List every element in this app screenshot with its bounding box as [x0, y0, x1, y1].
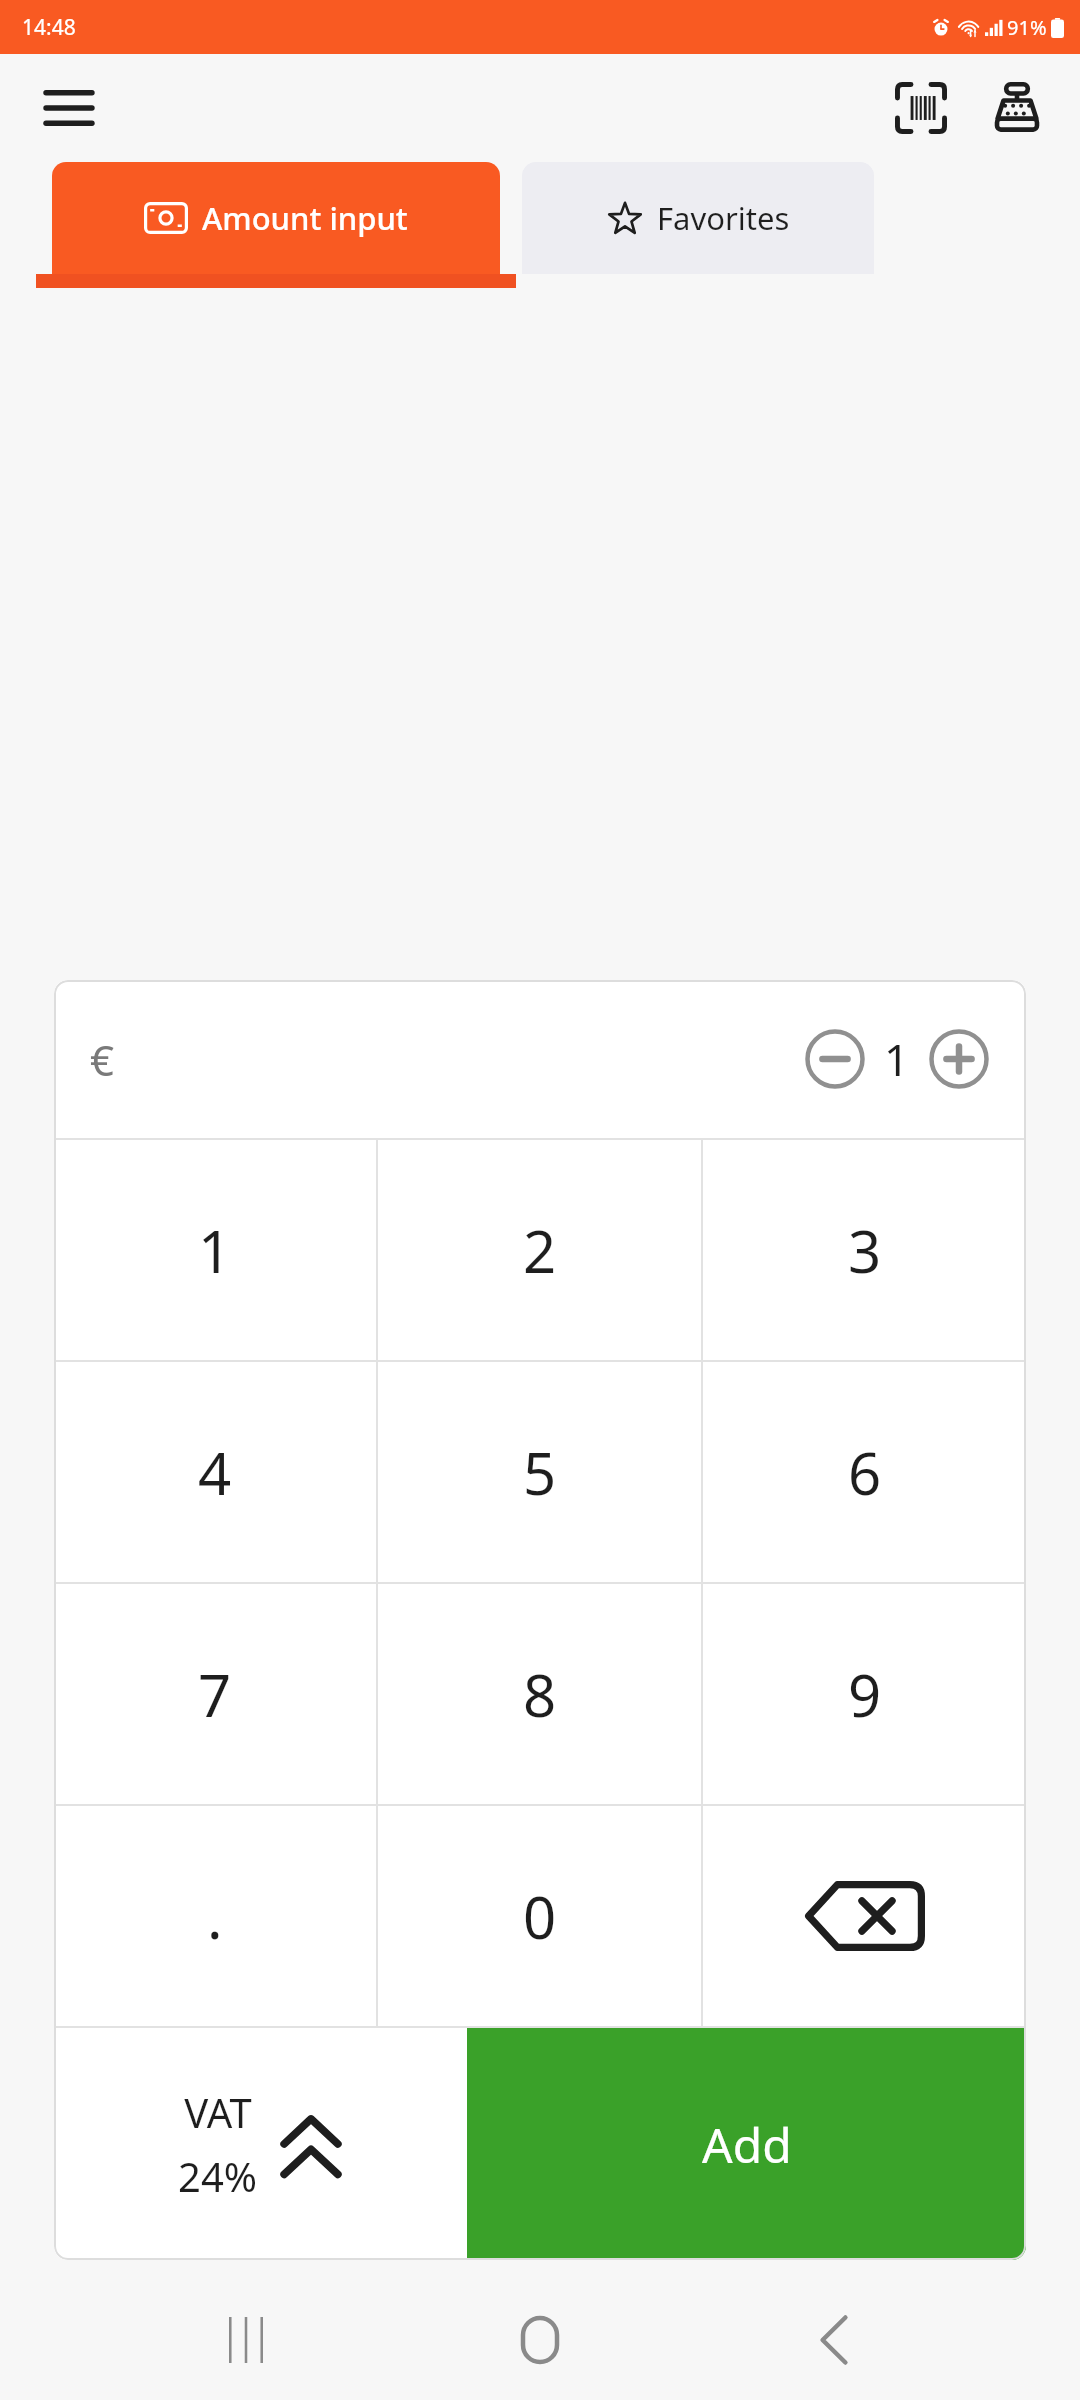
button[interactable]: 0	[378, 1806, 701, 2026]
staticText: VAT	[184, 2085, 252, 2139]
button[interactable]: .	[54, 1806, 376, 2026]
staticText: 8	[523, 1655, 557, 1734]
staticText: Add	[702, 2112, 792, 2177]
button[interactable]: Menu	[38, 77, 100, 139]
staticText: 4	[198, 1433, 232, 1512]
button[interactable]: 2	[378, 1140, 701, 1360]
staticText: 3	[848, 1211, 882, 1290]
button[interactable]: 8	[378, 1584, 701, 1804]
button[interactable]: 3	[703, 1140, 1026, 1360]
button[interactable]: Increase quantity	[926, 1026, 992, 1092]
staticText: 2	[523, 1211, 557, 1290]
staticText: €	[90, 1031, 115, 1088]
button[interactable]: Recent apps	[198, 2292, 294, 2388]
button[interactable]: Home	[492, 2292, 588, 2388]
staticText: 14:48	[22, 13, 76, 42]
staticText: Favorites	[657, 197, 790, 239]
button[interactable]: 4	[54, 1362, 376, 1582]
button[interactable]: 5	[378, 1362, 701, 1582]
staticText: 5	[523, 1433, 557, 1512]
button[interactable]: VAT	[54, 2028, 467, 2260]
staticText: 0	[523, 1877, 557, 1956]
button[interactable]: 7	[54, 1584, 376, 1804]
staticText: 91%	[1007, 14, 1047, 41]
button[interactable]: Favorites	[522, 162, 874, 274]
staticText: .	[207, 1877, 223, 1956]
button[interactable]: Backspace	[703, 1806, 1026, 2026]
staticText: 1	[198, 1211, 232, 1290]
button[interactable]: 6	[703, 1362, 1026, 1582]
staticText: 9	[848, 1655, 882, 1734]
staticText: Amount input	[202, 197, 408, 239]
staticText: 6	[848, 1433, 882, 1512]
staticText: 7	[198, 1655, 232, 1734]
staticText: 24%	[178, 2149, 257, 2203]
button[interactable]: Scan barcode	[884, 71, 958, 145]
button[interactable]: Decrease quantity	[802, 1026, 868, 1092]
button[interactable]: Add	[467, 2028, 1026, 2260]
button[interactable]: 9	[703, 1584, 1026, 1804]
button[interactable]: Cash register	[980, 71, 1054, 145]
staticText: 1	[884, 1029, 910, 1089]
button[interactable]: Back	[786, 2292, 882, 2388]
button[interactable]: 1	[54, 1140, 376, 1360]
button[interactable]: Amount input	[52, 162, 500, 274]
